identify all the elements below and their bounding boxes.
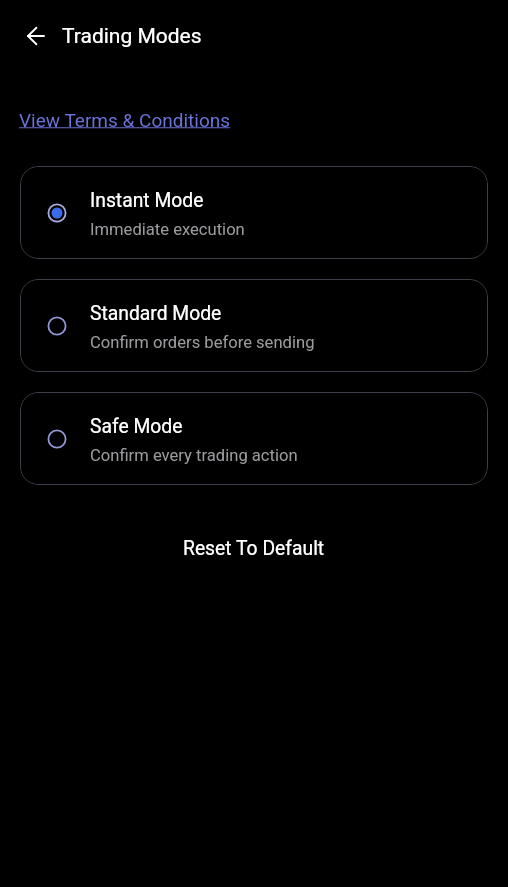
staticText: Instant Mode — [90, 189, 204, 212]
staticText: Trading Modes — [62, 24, 202, 49]
button[interactable]: View Terms & Conditions — [19, 109, 231, 131]
button[interactable]: Safe Mode — [20, 392, 488, 485]
button[interactable]: Instant Mode — [20, 166, 488, 259]
button[interactable]: Reset To Default — [167, 529, 341, 568]
staticText: Safe Mode — [90, 415, 183, 438]
button[interactable]: Back — [12, 12, 60, 60]
staticText: Confirm every trading action — [90, 446, 298, 465]
staticText: Confirm orders before sending — [90, 333, 315, 352]
staticText: Immediate execution — [90, 220, 245, 239]
staticText: View Terms & Conditions — [19, 109, 231, 131]
button[interactable]: Standard Mode — [20, 279, 488, 372]
staticText: Reset To Default — [183, 537, 325, 560]
staticText: Standard Mode — [90, 302, 222, 325]
